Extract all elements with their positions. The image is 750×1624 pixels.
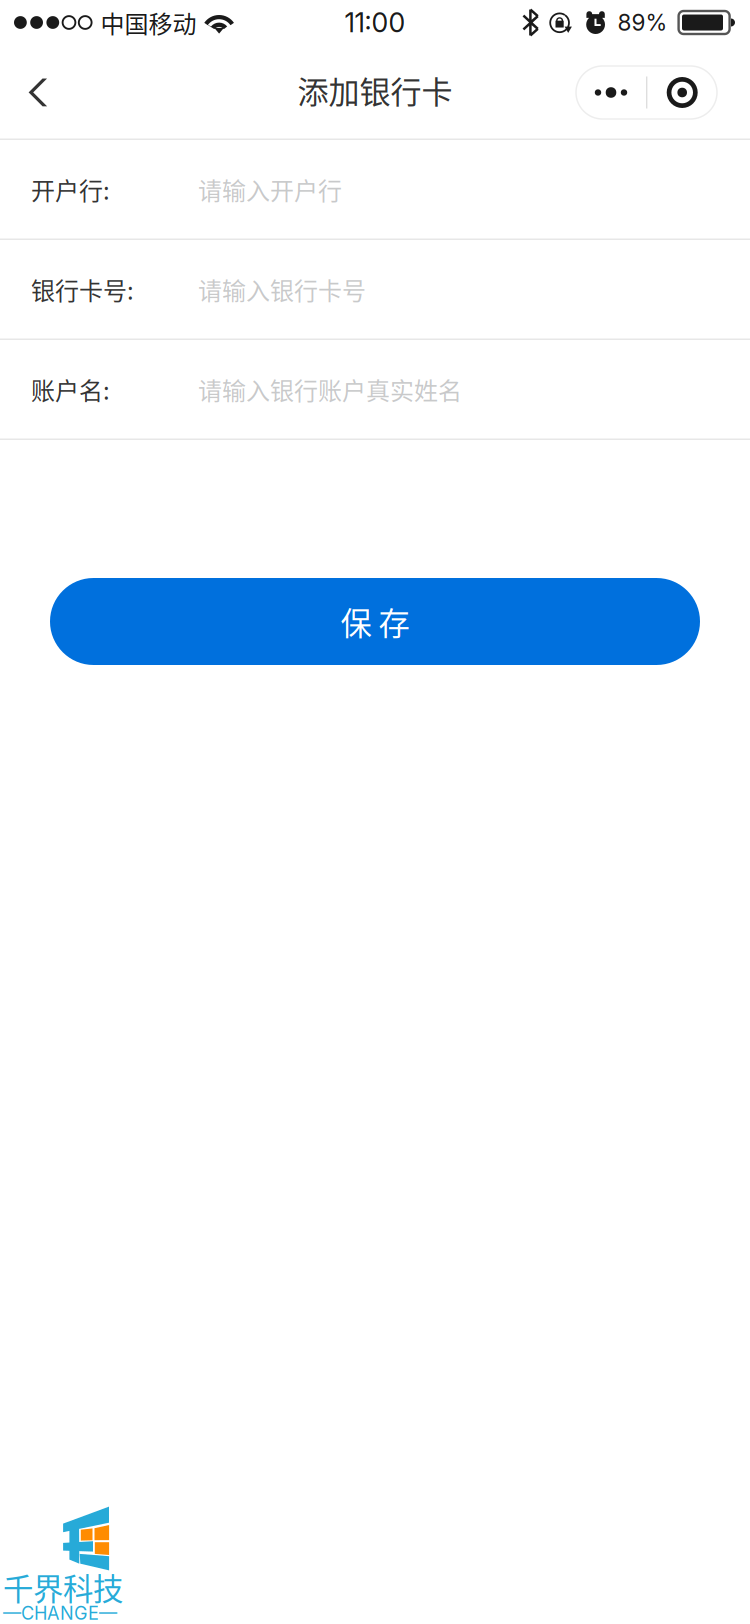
staticText: 银行卡号: (31, 272, 134, 307)
button[interactable]: 银行卡号: (0, 240, 750, 340)
staticText: 请输入开户行 (198, 172, 342, 207)
button[interactable]: 返回 (0, 45, 76, 140)
staticText: 请输入银行账户真实姓名 (198, 372, 462, 407)
button[interactable]: 开户行: (0, 140, 750, 240)
staticText: —CHANGE— (3, 1602, 117, 1624)
staticText: 89% (618, 9, 668, 36)
staticText: 开户行: (31, 172, 110, 207)
button[interactable]: 保 存 (50, 578, 700, 665)
button[interactable]: 账户名: (0, 340, 750, 440)
staticText: 添加银行卡 (297, 67, 452, 112)
staticText: 千界科技 (3, 1565, 123, 1609)
staticText: 账户名: (31, 372, 110, 407)
staticText: 请输入银行卡号 (198, 272, 366, 307)
staticText: 中国移动 (101, 5, 197, 40)
staticText: 11:00 (344, 6, 405, 39)
button[interactable]: 更多 (576, 66, 717, 119)
staticText: 保 存 (340, 599, 409, 644)
